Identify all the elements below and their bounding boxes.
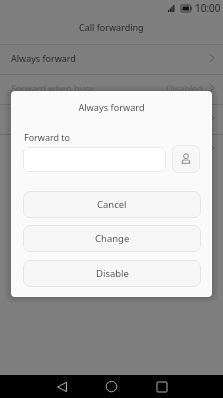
button[interactable]: Recent apps [144,375,179,398]
staticText: Cancel [97,198,127,211]
staticText: 10:00 [195,1,221,15]
staticText: Forward when unreachable [11,142,127,154]
staticText: Disable [96,267,129,280]
staticText: Call forwarding [79,21,144,33]
button[interactable]: Change [23,225,201,252]
staticText: Forward when unanswered [11,112,127,124]
button[interactable]: Choose contact [172,145,200,173]
button[interactable]: Cancel [23,191,201,218]
button[interactable]: Forward when unreachable [0,135,223,164]
button[interactable]: Forward when busy [0,75,223,104]
staticText: Always forward [11,52,76,64]
button[interactable]: Disable [23,260,201,287]
staticText: Change [95,232,130,245]
staticText: Disabled [166,142,203,154]
button[interactable]: Forward when unanswered [0,105,223,134]
staticText: Always forward [11,101,212,114]
button[interactable]: Home [94,375,129,398]
button[interactable]: Always forward [0,45,223,74]
staticText: Disabled [166,82,203,94]
staticText: Forward when busy [11,82,94,94]
button[interactable]: Back [44,375,79,398]
button[interactable] [23,147,166,172]
staticText: Forward to [24,131,71,143]
